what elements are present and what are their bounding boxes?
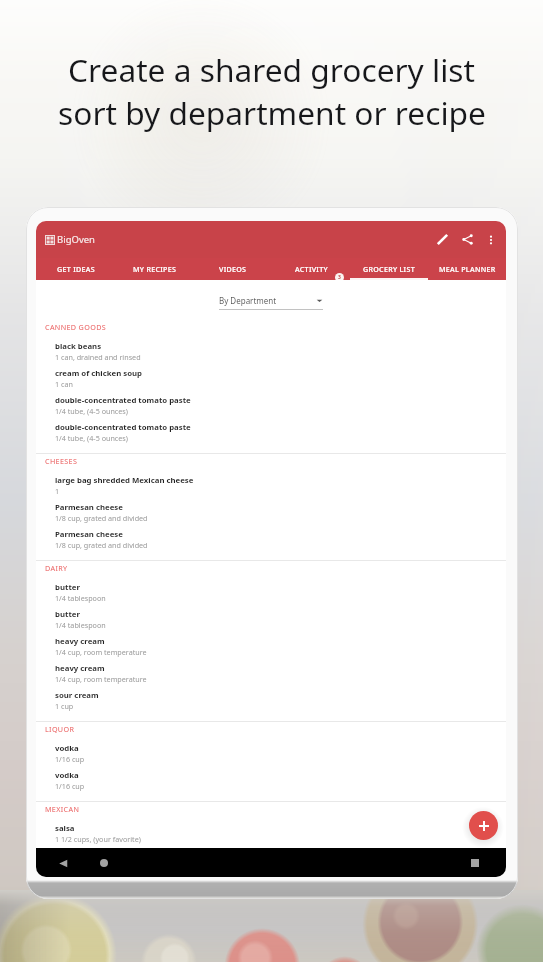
button[interactable]: double-concentrated tomato paste [36, 395, 506, 422]
staticText: 1/16 cup [55, 754, 85, 764]
button[interactable]: heavy cream [36, 636, 506, 663]
staticText: 1/8 cup, grated and divided [55, 540, 148, 550]
staticText: VIDEOS [219, 264, 247, 274]
staticText: GROCERY LIST [363, 264, 415, 274]
button[interactable]: cream of chicken soup [36, 368, 506, 395]
staticText: 1/4 tablespoon [55, 593, 106, 603]
staticText: 1/4 tablespoon [55, 620, 106, 630]
button[interactable]: Edit [430, 227, 455, 252]
staticText: 1/4 cup, room temperature [55, 647, 147, 657]
staticText: Create a shared grocery list [68, 48, 475, 91]
staticText: cream of chicken soup [55, 368, 143, 379]
staticText: sort by department or recipe [58, 91, 486, 134]
button[interactable]: butter [36, 609, 506, 636]
staticText: 1/8 cup, grated and divided [55, 513, 148, 523]
staticText: Parmesan cheese [55, 502, 123, 513]
button[interactable]: vodka [36, 770, 506, 797]
staticText: 1/16 cup [55, 781, 85, 791]
staticText: 1 [55, 486, 60, 496]
staticText: 1 1/2 cups, (your favorite) [55, 834, 141, 844]
button[interactable]: GROCERY LIST [350, 258, 428, 280]
button[interactable]: sour cream [36, 690, 506, 717]
staticText: MEAL PLANNER [439, 264, 496, 274]
staticText: MY RECIPES [133, 264, 177, 274]
staticText: butter [55, 582, 80, 593]
staticText: 1/4 tube, (4-5 ounces) [55, 433, 128, 443]
staticText: 1/4 cup, room temperature [55, 674, 147, 684]
staticText: GET IDEAS [57, 264, 95, 274]
button[interactable]: large bag shredded Mexican cheese [36, 475, 506, 502]
staticText: vodka [55, 743, 79, 754]
button[interactable]: VIDEOS [194, 258, 272, 280]
staticText: vodka [55, 770, 79, 781]
staticText: black beans [55, 341, 102, 352]
staticText: 1 can [55, 379, 73, 389]
staticText: Parmesan cheese [55, 529, 123, 540]
staticText: MEXICAN [45, 804, 80, 814]
button[interactable]: salsa [36, 823, 506, 848]
button[interactable]: Parmesan cheese [36, 502, 506, 529]
staticText: CANNED GOODS [45, 322, 107, 332]
button[interactable]: Add item [469, 811, 498, 840]
button[interactable]: Parmesan cheese [36, 529, 506, 556]
staticText: By Department [219, 295, 277, 306]
button[interactable]: Home [96, 855, 112, 871]
staticText: 1/4 tube, (4-5 ounces) [55, 406, 128, 416]
staticText: CHEESES [45, 456, 78, 466]
button[interactable]: MEAL PLANNER [428, 258, 506, 280]
button[interactable]: Share [455, 227, 480, 252]
button[interactable]: By Department [219, 295, 323, 310]
staticText: LIQUOR [45, 724, 75, 734]
staticText: large bag shredded Mexican cheese [55, 475, 194, 486]
staticText: heavy cream [55, 636, 105, 647]
button[interactable]: More options [480, 229, 502, 251]
staticText: salsa [55, 823, 75, 834]
staticText: DAIRY [45, 563, 68, 573]
button[interactable]: GET IDEAS [36, 258, 115, 280]
button[interactable]: heavy cream [36, 663, 506, 690]
staticText: 1 cup [55, 701, 74, 711]
staticText: ACTIVITY [295, 264, 328, 274]
button[interactable]: black beans [36, 341, 506, 368]
staticText: double-concentrated tomato paste [55, 422, 191, 433]
staticText: 1 can, drained and rinsed [55, 352, 141, 362]
staticText: butter [55, 609, 80, 620]
button[interactable]: vodka [36, 743, 506, 770]
staticText: sour cream [55, 690, 99, 701]
button[interactable]: Recents [467, 855, 483, 871]
button[interactable]: butter [36, 582, 506, 609]
staticText: 3 [338, 274, 341, 281]
staticText: double-concentrated tomato paste [55, 395, 191, 406]
button[interactable]: double-concentrated tomato paste [36, 422, 506, 449]
button[interactable]: MY RECIPES [115, 258, 194, 280]
button[interactable]: ACTIVITY [272, 258, 350, 280]
staticText: BigOven [57, 233, 95, 246]
staticText: heavy cream [55, 663, 105, 674]
button[interactable]: Back [55, 855, 71, 871]
